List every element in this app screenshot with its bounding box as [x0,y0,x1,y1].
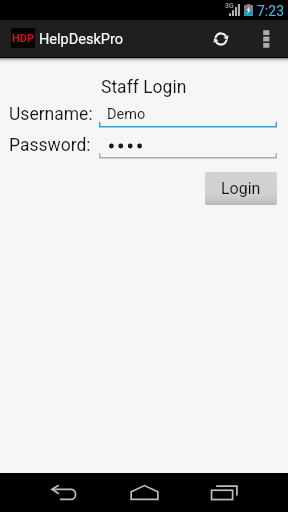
staticText: Password: [9,135,91,156]
button[interactable]: Login [205,172,277,205]
button[interactable]: Back [31,473,97,512]
staticText: 7:23 [257,3,284,19]
staticText: HDP [12,32,35,45]
staticText: Staff Login [101,77,187,98]
button[interactable]: Refresh [202,20,239,57]
staticText: Login [221,179,261,198]
button[interactable] [99,135,277,161]
button[interactable] [99,104,277,130]
button[interactable]: Recent apps [191,473,257,512]
staticText: HelpDeskPro [39,31,123,48]
staticText: 3G [225,2,234,10]
button[interactable]: More options [251,20,281,57]
staticText: Demo [107,106,146,123]
button[interactable]: Home [111,473,177,512]
staticText: Username: [9,104,93,125]
